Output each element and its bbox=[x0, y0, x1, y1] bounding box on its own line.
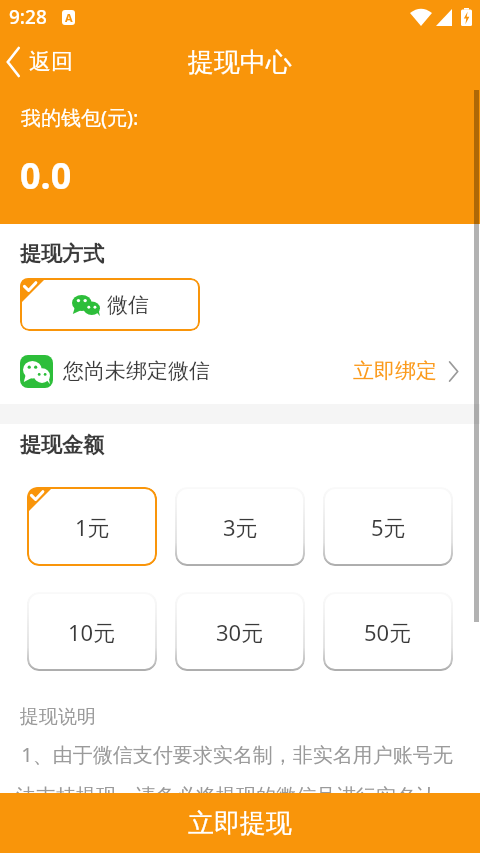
button[interactable]: 立即提现 bbox=[0, 793, 480, 853]
button[interactable]: 1元 bbox=[27, 487, 157, 566]
button[interactable]: 10元 bbox=[27, 592, 157, 671]
staticText: 您尚未绑定微信 bbox=[63, 358, 210, 384]
staticText: 5元 bbox=[371, 512, 406, 542]
button[interactable]: 微信 bbox=[20, 278, 200, 331]
staticText: 1、由于微信支付要求实名制，非实名用户账号无法支持提现。请务必将提现的微信号进行… bbox=[16, 741, 460, 849]
staticText: A bbox=[65, 10, 73, 25]
button[interactable]: 3元 bbox=[175, 487, 305, 566]
staticText: 立即绑定 bbox=[353, 358, 437, 384]
staticText: 3元 bbox=[223, 512, 258, 542]
staticText: 50元 bbox=[364, 617, 412, 647]
button[interactable]: 30元 bbox=[175, 592, 305, 671]
button[interactable]: 5元 bbox=[323, 487, 453, 566]
staticText: 0.0 bbox=[20, 151, 72, 200]
staticText: 提现中心 bbox=[188, 46, 292, 79]
staticText: 我的钱包(元): bbox=[21, 104, 139, 131]
staticText: 提现方式 bbox=[20, 241, 104, 267]
staticText: 微信 bbox=[107, 292, 149, 318]
button[interactable]: 您尚未绑定微信 bbox=[0, 352, 480, 390]
staticText: 提现说明 bbox=[20, 705, 96, 729]
staticText: 30元 bbox=[216, 617, 264, 647]
staticText: 1元 bbox=[75, 512, 110, 542]
staticText: 提现金额 bbox=[20, 432, 104, 458]
staticText: 9:28 bbox=[9, 4, 47, 30]
staticText: 立即提现 bbox=[188, 807, 292, 840]
staticText: 返回 bbox=[29, 48, 73, 76]
button[interactable]: Back bbox=[0, 44, 83, 80]
staticText: 10元 bbox=[68, 617, 116, 647]
button[interactable]: 50元 bbox=[323, 592, 453, 671]
other: Back bbox=[6, 48, 21, 76]
